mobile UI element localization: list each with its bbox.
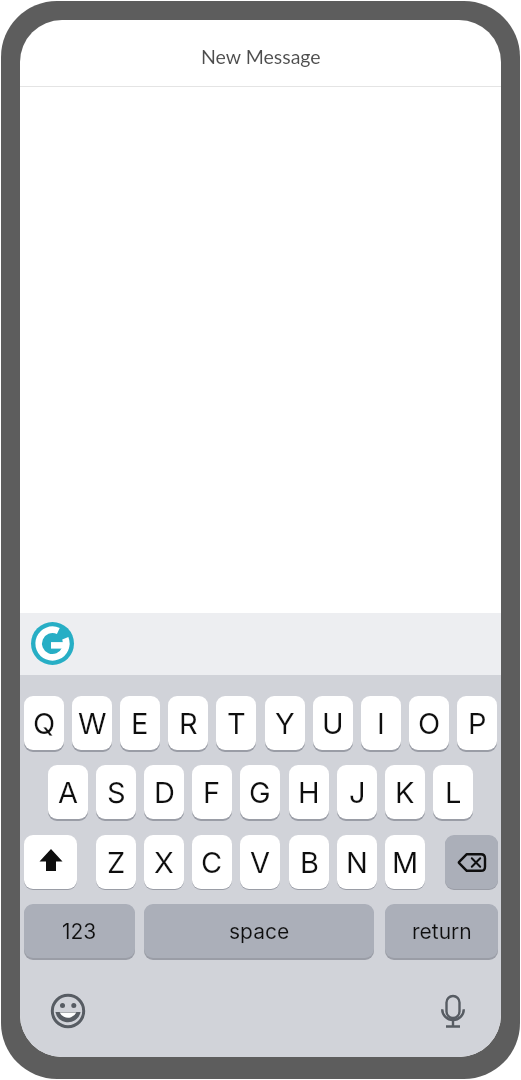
- button[interactable]: M: [385, 835, 425, 889]
- button[interactable]: U: [313, 696, 353, 750]
- button[interactable]: [24, 835, 77, 889]
- button[interactable]: I: [361, 696, 401, 750]
- button[interactable]: X: [144, 835, 184, 889]
- staticText: New Message: [201, 45, 321, 68]
- button[interactable]: H: [289, 765, 329, 819]
- staticText: B: [300, 845, 319, 880]
- button[interactable]: R: [168, 696, 208, 750]
- button[interactable]: [433, 991, 473, 1031]
- staticText: L: [445, 775, 462, 810]
- button[interactable]: return: [385, 904, 498, 958]
- staticText: G: [249, 775, 271, 810]
- staticText: I: [377, 706, 385, 741]
- staticText: A: [58, 775, 79, 810]
- button[interactable]: B: [289, 835, 329, 889]
- staticText: T: [227, 706, 246, 741]
- staticText: D: [154, 775, 175, 810]
- button[interactable]: Y: [265, 696, 305, 750]
- button[interactable]: L: [433, 765, 473, 819]
- staticText: space: [229, 919, 290, 944]
- staticText: O: [418, 706, 441, 741]
- button[interactable]: C: [192, 835, 232, 889]
- button[interactable]: space: [144, 904, 374, 958]
- staticText: U: [322, 706, 344, 741]
- staticText: X: [154, 845, 174, 880]
- staticText: E: [131, 706, 149, 741]
- button[interactable]: A: [48, 765, 88, 819]
- button[interactable]: D: [144, 765, 184, 819]
- button[interactable]: S: [96, 765, 136, 819]
- button[interactable]: O: [409, 696, 449, 750]
- staticText: H: [298, 775, 320, 810]
- button[interactable]: Q: [24, 696, 64, 750]
- staticText: return: [412, 919, 472, 944]
- staticText: S: [107, 775, 126, 810]
- staticText: M: [392, 845, 419, 880]
- button[interactable]: N: [337, 835, 377, 889]
- button[interactable]: [445, 835, 498, 889]
- button[interactable]: J: [337, 765, 377, 819]
- staticText: K: [395, 775, 415, 810]
- staticText: J: [349, 775, 366, 810]
- button[interactable]: F: [192, 765, 232, 819]
- staticText: V: [250, 845, 271, 880]
- staticText: N: [346, 845, 368, 880]
- staticText: C: [201, 845, 223, 880]
- staticText: F: [203, 775, 221, 810]
- staticText: Q: [33, 706, 56, 741]
- button[interactable]: W: [72, 696, 112, 750]
- staticText: 123: [62, 919, 97, 944]
- button[interactable]: K: [385, 765, 425, 819]
- button[interactable]: P: [457, 696, 497, 750]
- button[interactable]: V: [240, 835, 280, 889]
- staticText: P: [468, 706, 487, 741]
- button[interactable]: G: [240, 765, 280, 819]
- button[interactable]: [48, 991, 88, 1031]
- button[interactable]: Z: [96, 835, 136, 889]
- staticText: R: [179, 706, 198, 741]
- staticText: W: [78, 706, 107, 741]
- button[interactable]: E: [120, 696, 160, 750]
- staticText: Y: [275, 706, 295, 741]
- button[interactable]: [31, 622, 74, 665]
- button[interactable]: T: [216, 696, 256, 750]
- button[interactable]: 123: [24, 904, 135, 958]
- staticText: Z: [107, 845, 126, 880]
